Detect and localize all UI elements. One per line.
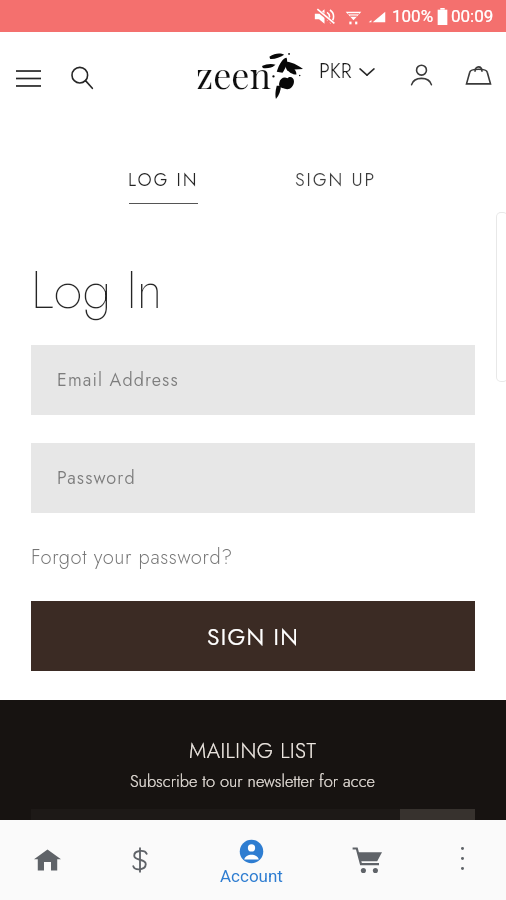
button[interactable]: LOG IN	[116, 167, 211, 204]
staticText: SIGN IN	[207, 620, 300, 653]
staticText: Email Address	[57, 367, 179, 393]
button[interactable]: Account	[186, 820, 316, 900]
staticText: PKR	[319, 57, 352, 86]
staticText: MAILING LIST	[189, 736, 317, 766]
button[interactable]: SIGN IN	[31, 601, 475, 671]
staticText: Subscribe to our newsletter for acce	[130, 769, 376, 793]
button[interactable]: Currency	[94, 820, 186, 900]
button[interactable]: Account	[400, 53, 442, 95]
button[interactable]: Cart	[316, 820, 418, 900]
staticText: Account	[220, 866, 283, 886]
staticText: LOG IN	[128, 167, 199, 193]
staticText: SIGN UP	[295, 167, 377, 193]
staticText: Password	[57, 465, 136, 491]
button[interactable]: Shopping bag	[457, 53, 499, 95]
staticText: Log In	[31, 252, 163, 327]
button[interactable]: Forgot your password?	[31, 543, 233, 572]
button[interactable]: Password	[31, 443, 475, 513]
button[interactable]: SIGN UP	[283, 167, 389, 193]
button[interactable]: More options	[418, 820, 506, 900]
button[interactable]: Home	[0, 820, 94, 900]
staticText: 100%	[392, 6, 434, 26]
button[interactable]: Email Address	[31, 345, 475, 415]
staticText: 00:09	[451, 6, 494, 26]
button[interactable]: PKR	[315, 48, 378, 95]
button[interactable]: Menu	[6, 57, 51, 99]
button[interactable]: Search	[61, 57, 103, 99]
staticText: zeen	[196, 50, 272, 98]
